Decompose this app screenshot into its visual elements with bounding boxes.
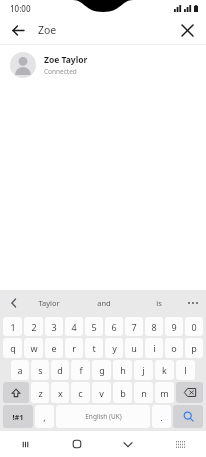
staticText: m [160, 387, 169, 399]
staticText: r [72, 342, 76, 354]
button[interactable]: 0 [185, 317, 203, 336]
staticText: 3 [51, 321, 57, 333]
button[interactable]: Clear [174, 17, 200, 43]
button[interactable]: 2 [24, 317, 43, 336]
staticText: , [43, 411, 46, 423]
button[interactable]: 1 [3, 317, 22, 336]
button[interactable]: . [152, 405, 171, 428]
staticText: a [17, 364, 23, 376]
button[interactable]: g [92, 360, 111, 380]
button[interactable]: f [71, 360, 90, 380]
button[interactable]: b [113, 382, 132, 403]
staticText: q [10, 342, 16, 354]
button[interactable]: 3 [45, 317, 63, 336]
staticText: 0 [191, 321, 197, 333]
button[interactable]: More options [184, 294, 202, 312]
button[interactable]: Shift [3, 382, 29, 403]
staticText: v [99, 387, 104, 399]
staticText: l [184, 364, 187, 376]
button[interactable]: 8 [145, 317, 163, 336]
staticText: p [191, 342, 197, 354]
staticText: 2 [31, 321, 37, 333]
staticText: 5 [91, 321, 97, 333]
button[interactable]: u [125, 338, 143, 358]
staticText: s [38, 364, 43, 376]
staticText: e [51, 342, 57, 354]
button[interactable]: j [134, 360, 153, 380]
button[interactable]: Zoe Taylor [0, 45, 206, 85]
button[interactable]: a [11, 360, 29, 380]
staticText: is [156, 298, 162, 308]
button[interactable]: k [155, 360, 174, 380]
staticText: and [97, 298, 111, 308]
button[interactable]: Home [51, 431, 102, 457]
button[interactable]: 4 [65, 317, 83, 336]
staticText: 6 [111, 321, 117, 333]
button[interactable]: x [51, 382, 69, 403]
staticText: 9 [171, 321, 177, 333]
button[interactable]: Backspace [176, 382, 203, 403]
button[interactable]: d [51, 360, 69, 380]
button[interactable]: and [76, 290, 131, 316]
staticText: 7 [131, 321, 137, 333]
button[interactable]: Recents [0, 431, 51, 457]
staticText: j [142, 364, 145, 376]
button[interactable]: Keyboard layout [154, 431, 206, 457]
staticText: z [38, 387, 43, 399]
staticText: 1 [10, 321, 16, 333]
staticText: Taylor [38, 298, 60, 308]
button[interactable]: 6 [105, 317, 123, 336]
button[interactable]: w [24, 338, 43, 358]
staticText: c [78, 387, 83, 399]
staticText: w [30, 342, 38, 354]
staticText: n [141, 387, 147, 399]
staticText: o [171, 342, 177, 354]
button[interactable]: 9 [165, 317, 183, 336]
button[interactable]: l [176, 360, 195, 380]
button[interactable]: h [113, 360, 132, 380]
staticText: f [79, 364, 83, 376]
button[interactable]: s [31, 360, 49, 380]
button[interactable]: Taylor [22, 290, 76, 316]
button[interactable]: c [71, 382, 90, 403]
staticText: x [58, 387, 63, 399]
button[interactable]: t [85, 338, 103, 358]
button[interactable]: Back [4, 16, 32, 44]
staticText: 4 [71, 321, 77, 333]
staticText: g [99, 364, 105, 376]
button[interactable]: y [105, 338, 123, 358]
button[interactable]: q [3, 338, 22, 358]
button[interactable]: Previous suggestions [4, 293, 24, 313]
button[interactable]: o [165, 338, 183, 358]
button[interactable]: m [155, 382, 174, 403]
staticText: i [153, 342, 156, 354]
button[interactable]: p [185, 338, 203, 358]
staticText: k [162, 364, 167, 376]
staticText: y [112, 342, 117, 354]
staticText: 10:00 [10, 3, 31, 14]
button[interactable]: n [134, 382, 153, 403]
button[interactable]: z [31, 382, 49, 403]
button[interactable]: English (UK) [56, 405, 150, 428]
button[interactable]: 5 [85, 317, 103, 336]
button[interactable]: !#1 [3, 405, 33, 428]
button[interactable]: Hide keyboard [102, 431, 154, 457]
button[interactable]: i [145, 338, 163, 358]
staticText: t [92, 342, 96, 354]
button[interactable]: , [35, 405, 54, 428]
button[interactable]: is [131, 290, 186, 316]
staticText: u [131, 342, 137, 354]
staticText: d [57, 364, 63, 376]
button[interactable]: r [65, 338, 83, 358]
staticText: Zoe [38, 23, 57, 37]
button[interactable]: Search [173, 405, 203, 428]
staticText: 8 [151, 321, 157, 333]
button[interactable]: v [92, 382, 111, 403]
button[interactable]: 7 [125, 317, 143, 336]
staticText: Zoe Taylor [44, 54, 88, 66]
button[interactable]: e [45, 338, 63, 358]
staticText: !#1 [12, 412, 24, 422]
staticText: English (UK) [85, 412, 122, 421]
staticText: b [120, 387, 126, 399]
staticText: h [120, 364, 126, 376]
